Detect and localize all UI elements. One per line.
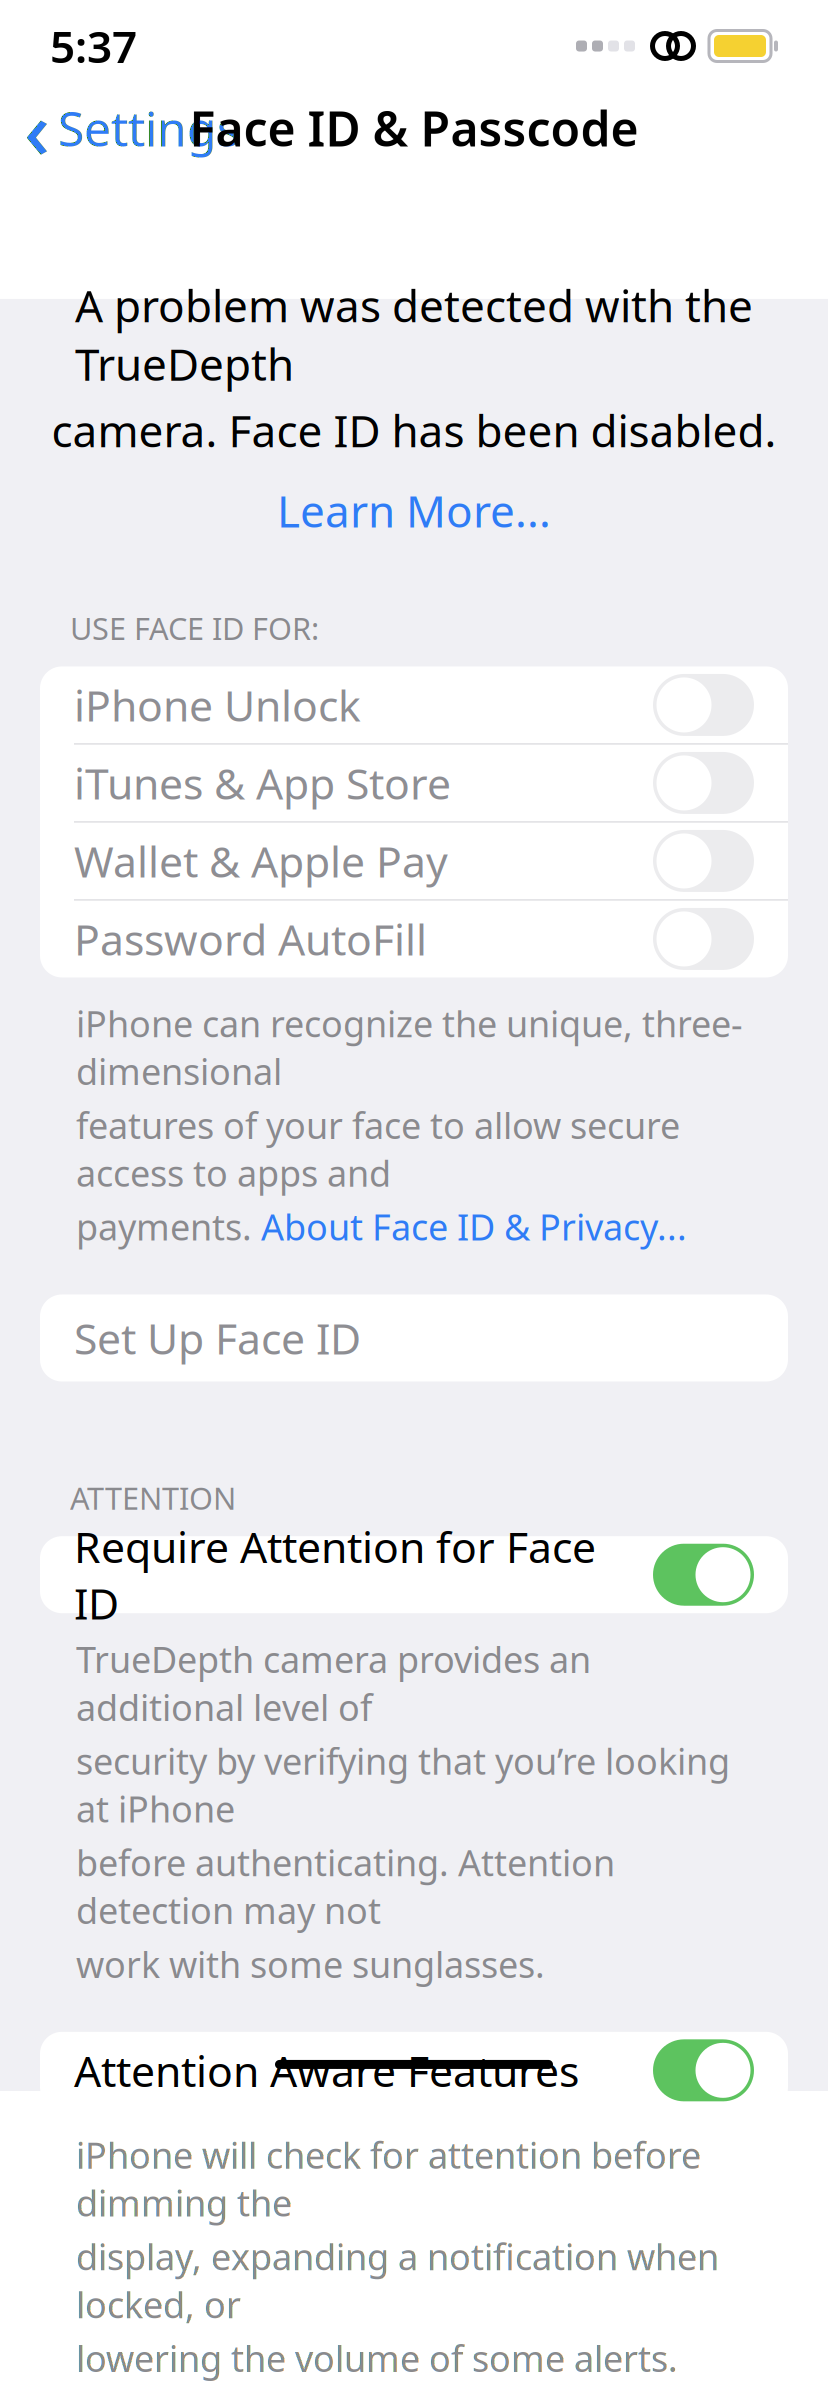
staticText: A problem was detected with the TrueDept…: [75, 276, 753, 393]
staticText: Face ID & Passcode: [189, 96, 638, 160]
staticText: Require Attention for Face ID: [74, 1518, 596, 1631]
staticText: work with some sunglasses.: [76, 1940, 545, 1988]
button[interactable]: ‹: [0, 95, 256, 161]
staticText: Password AutoFill: [74, 911, 427, 967]
button[interactable]: Set Up Face ID: [40, 1294, 788, 1381]
staticText: iPhone Unlock: [74, 677, 361, 733]
staticText: ATTENTION: [70, 1477, 236, 1518]
staticText: camera. Face ID has been disabled.: [51, 401, 776, 459]
button[interactable]: Wallet & Apple Pay: [40, 822, 788, 899]
staticText: ‹: [24, 75, 50, 181]
staticText: iPhone will check for attention before d…: [76, 2131, 701, 2226]
staticText: payments.: [76, 1203, 261, 1250]
button[interactable]: About Face ID & Privacy...: [261, 1203, 687, 1250]
button[interactable]: Password AutoFill: [40, 900, 788, 977]
staticText: display, expanding a notification when l…: [76, 2232, 719, 2328]
button[interactable]: Learn More...: [257, 475, 571, 546]
staticText: security by verifying that you’re lookin…: [76, 1737, 730, 1832]
button[interactable]: Attention Aware Features: [40, 2032, 788, 2109]
button[interactable]: iTunes & App Store: [40, 744, 788, 821]
staticText: Set Up Face ID: [74, 1310, 361, 1366]
staticText: About Face ID & Privacy...: [261, 1203, 687, 1250]
staticText: Settings: [58, 96, 240, 160]
staticText: Learn More...: [277, 481, 551, 540]
staticText: Wallet & Apple Pay: [74, 833, 448, 889]
staticText: lowering the volume of some alerts.: [76, 2334, 678, 2382]
staticText: TrueDepth camera provides an additional …: [76, 1635, 591, 1731]
staticText: USE FACE ID FOR:: [70, 608, 319, 648]
staticText: iPhone can recognize the unique, three-d…: [76, 999, 743, 1095]
staticText: Attention Aware Features: [74, 2042, 579, 2099]
button[interactable]: iPhone Unlock: [40, 666, 788, 743]
button[interactable]: Require Attention for Face ID: [40, 1536, 788, 1613]
staticText: iTunes & App Store: [74, 755, 451, 811]
staticText: before authenticating. Attention detecti…: [76, 1838, 615, 1934]
staticText: features of your face to allow secure ac…: [76, 1101, 680, 1197]
